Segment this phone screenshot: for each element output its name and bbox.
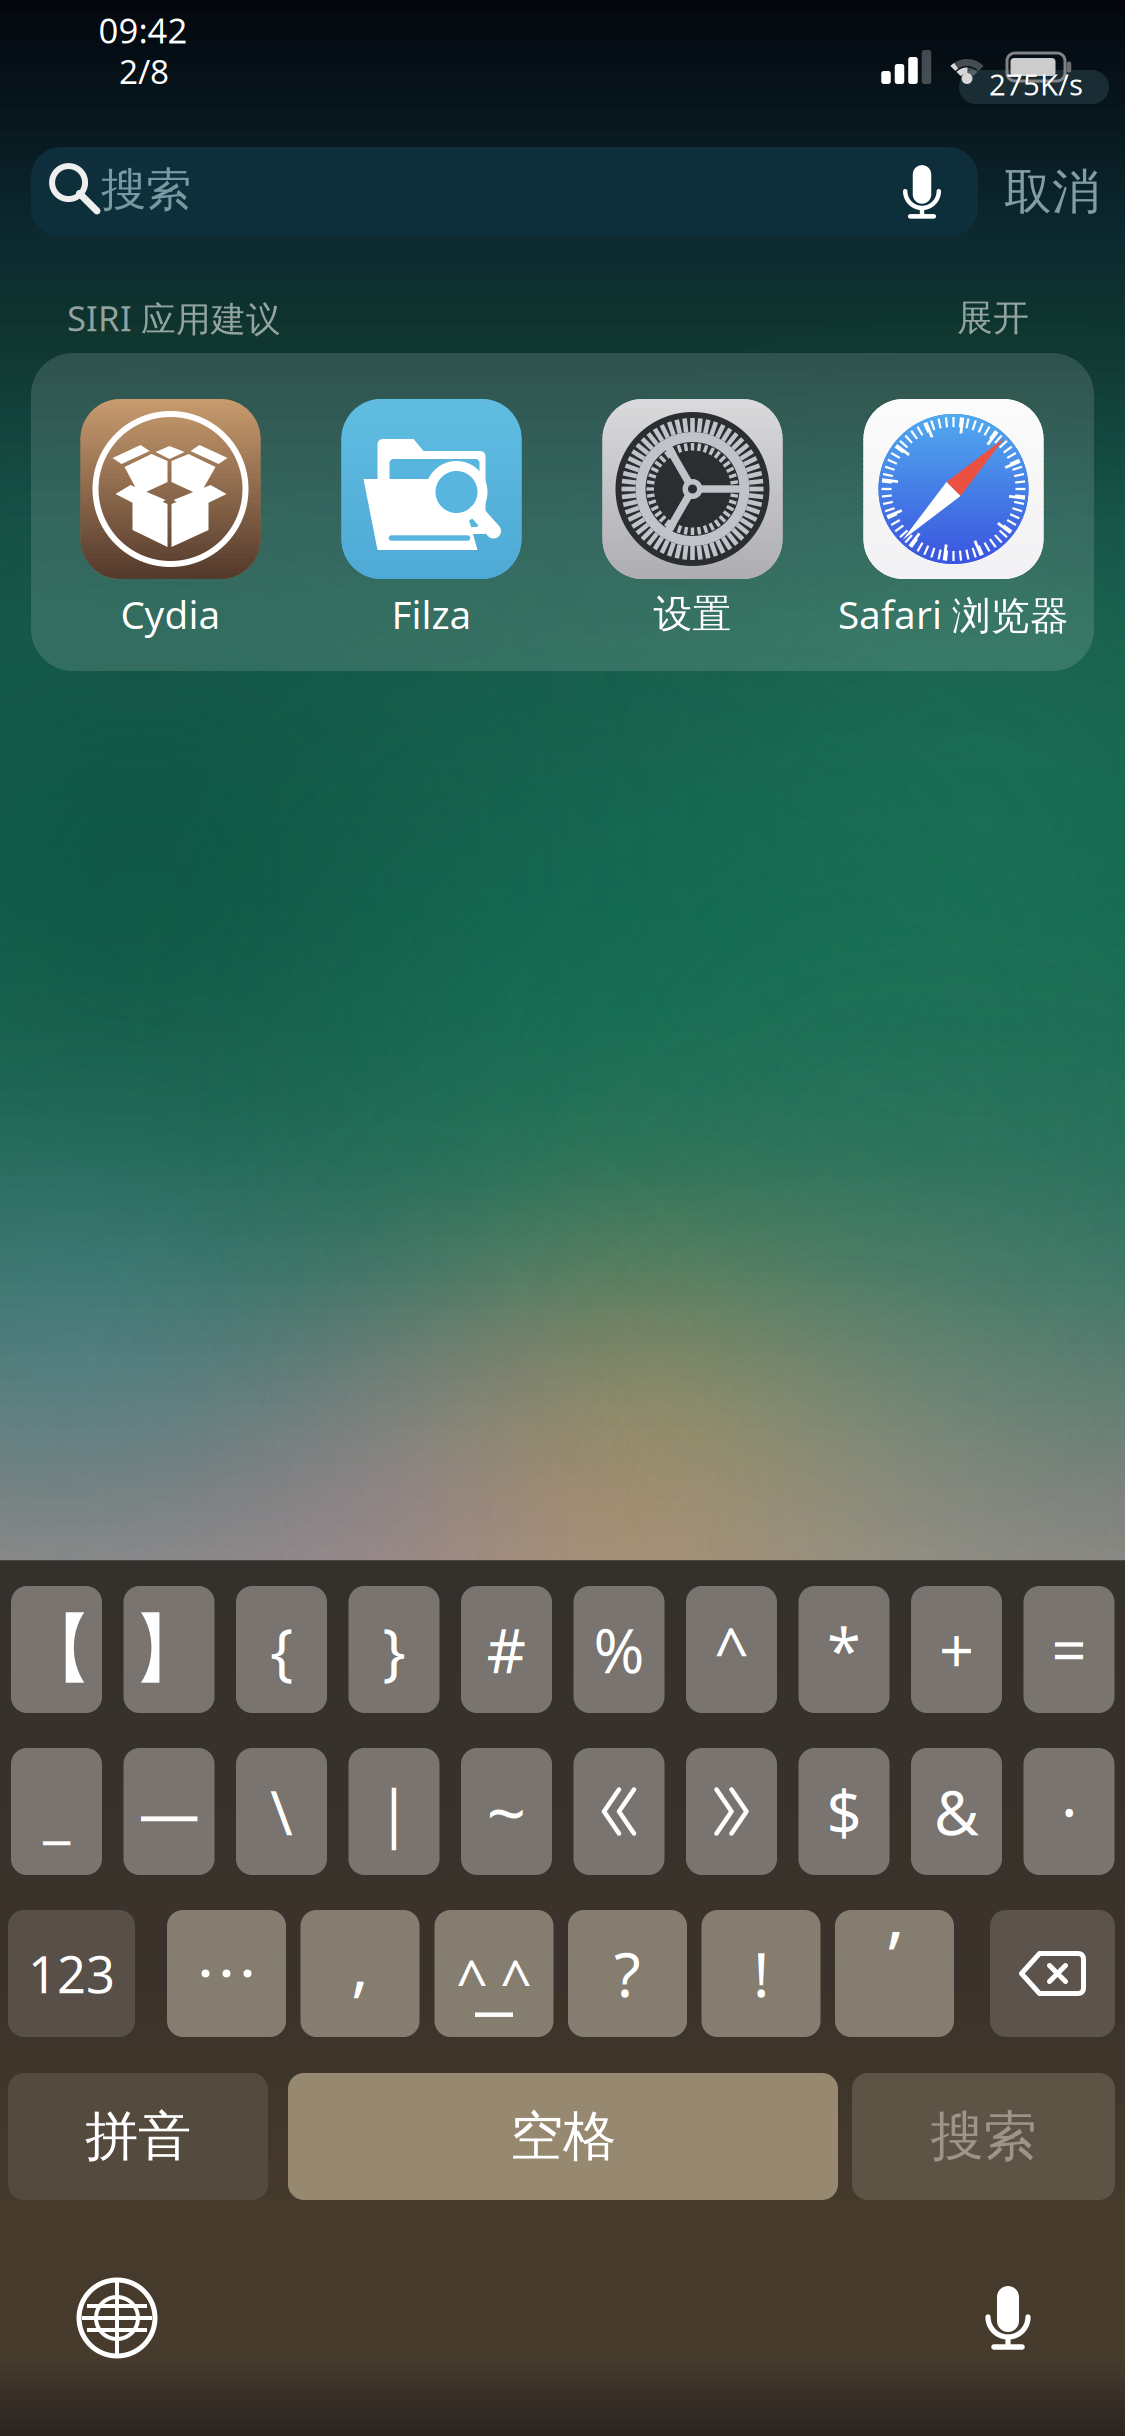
staticText: +: [939, 1609, 974, 1690]
button[interactable]: Filza: [341, 399, 521, 579]
staticText: 】: [131, 1604, 206, 1695]
button[interactable]: Delete: [990, 1910, 1115, 2037]
staticText: ^: [714, 1609, 749, 1690]
staticText: _: [43, 1771, 70, 1852]
button[interactable]: +: [911, 1586, 1002, 1713]
button[interactable]: ,: [300, 1910, 419, 2037]
staticText: ’: [888, 1908, 901, 2003]
button[interactable]: {: [236, 1586, 327, 1713]
staticText: 搜索: [101, 162, 191, 218]
button[interactable]: 展开: [938, 293, 1048, 343]
staticText: Cydia: [120, 588, 220, 640]
staticText: &: [934, 1771, 979, 1852]
button[interactable]: 】: [123, 1586, 214, 1713]
button[interactable]: =: [1023, 1586, 1114, 1713]
button[interactable]: —: [123, 1748, 214, 1875]
button[interactable]: Safari 浏览器: [863, 399, 1043, 579]
button[interactable]: $: [798, 1748, 889, 1875]
staticText: 2/8: [119, 49, 169, 93]
button[interactable]: ~: [461, 1748, 552, 1875]
button[interactable]: 听写: [882, 147, 962, 237]
button[interactable]: !: [701, 1910, 820, 2037]
button[interactable]: …: [167, 1910, 286, 2037]
button[interactable]: 设置: [602, 399, 782, 579]
button[interactable]: 取消: [987, 147, 1117, 237]
staticText: ,: [351, 1919, 369, 2008]
staticText: 取消: [1004, 162, 1100, 221]
button[interactable]: *: [798, 1586, 889, 1713]
button[interactable]: #: [461, 1586, 552, 1713]
staticText: 展开: [957, 296, 1029, 340]
staticText: 设置: [653, 590, 731, 638]
staticText: 空格: [510, 2104, 616, 2169]
button[interactable]: ·: [1023, 1748, 1114, 1875]
staticText: !: [753, 1933, 769, 2014]
button[interactable]: }: [348, 1586, 439, 1713]
button[interactable]: Cydia: [80, 399, 260, 579]
staticText: }: [382, 1609, 405, 1690]
staticText: =: [1051, 1609, 1086, 1690]
button[interactable]: 123: [8, 1910, 135, 2037]
staticText: 搜索: [930, 2104, 1036, 2169]
staticText: ~: [486, 1765, 526, 1858]
staticText: 123: [28, 1940, 115, 2007]
button[interactable]: 搜索: [31, 147, 978, 237]
button[interactable]: Dictation: [953, 2263, 1063, 2373]
button[interactable]: \: [236, 1748, 327, 1875]
staticText: —: [138, 1771, 199, 1852]
staticText: SIRI 应用建议: [67, 295, 281, 341]
staticText: 【: [19, 1604, 94, 1695]
button[interactable]: ’: [835, 1910, 954, 2037]
button[interactable]: |: [348, 1748, 439, 1875]
staticText: |: [377, 1771, 411, 1852]
button[interactable]: 空格: [288, 2073, 838, 2200]
button[interactable]: 【: [11, 1586, 102, 1713]
staticText: ?: [614, 1933, 641, 2014]
button[interactable]: ^_^: [434, 1910, 553, 2037]
button[interactable]: ^: [686, 1586, 777, 1713]
button[interactable]: %: [573, 1586, 664, 1713]
button[interactable]: Next keyboard: [62, 2263, 172, 2373]
staticText: Safari 浏览器: [838, 588, 1069, 640]
staticText: 09:42: [98, 7, 187, 53]
button[interactable]: 搜索: [852, 2073, 1115, 2200]
staticText: {: [270, 1609, 293, 1690]
button[interactable]: 《: [573, 1748, 664, 1875]
staticText: 275K/s: [989, 64, 1083, 103]
button[interactable]: _: [11, 1748, 102, 1875]
staticText: 拼音: [85, 2104, 191, 2169]
staticText: #: [486, 1609, 526, 1690]
staticText: *: [827, 1609, 861, 1690]
staticText: Filza: [391, 588, 471, 640]
staticText: \: [270, 1771, 293, 1852]
staticText: $: [826, 1771, 861, 1852]
staticText: ^: [500, 1942, 532, 2016]
staticText: %: [593, 1609, 644, 1690]
button[interactable]: ?: [568, 1910, 687, 2037]
button[interactable]: 》: [686, 1748, 777, 1875]
staticText: ·: [1061, 1771, 1077, 1852]
staticText: ^: [456, 1942, 488, 2016]
button[interactable]: &: [911, 1748, 1002, 1875]
button[interactable]: 拼音: [8, 2073, 268, 2200]
